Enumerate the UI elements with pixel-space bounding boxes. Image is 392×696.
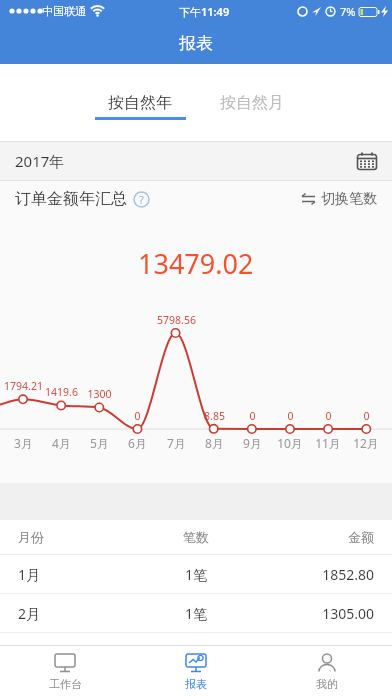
staticText: 报表 [179,33,213,54]
staticText: 12月 [353,435,379,451]
staticText: 5798.56 [157,313,196,327]
staticText: 1笔 [98,565,294,584]
staticText: 1852.80 [294,565,374,584]
staticText: 按自然月 [220,93,284,113]
button[interactable]: 切换笔数 [301,190,377,208]
staticText: 0 [134,409,141,423]
staticText: 1月 [18,565,98,584]
staticText: 11月 [315,435,341,451]
staticText: 月份 [18,529,98,545]
staticText: 7% [340,4,356,19]
button[interactable]: 我的 [261,646,392,696]
staticText: 1794.21 [4,379,43,393]
staticText: 按自然年 [108,93,172,113]
staticText: 我的 [316,677,338,691]
staticText: 0 [325,409,332,423]
staticText: 13479.02 [138,245,254,282]
staticText: 订单金额年汇总 [15,189,127,209]
staticText: 3月 [14,435,33,451]
button[interactable]: 1月 [0,555,392,593]
button[interactable]: 按自然月 [196,64,308,141]
staticText: 7月 [167,435,186,451]
staticText: 工作台 [49,677,82,691]
staticText: 10月 [277,435,303,451]
button[interactable]: ? [133,191,150,208]
button[interactable]: 报表 [130,646,261,696]
staticText: 8.85 [204,409,225,423]
button[interactable]: 2月 [0,594,392,632]
staticText: 笔数 [98,529,294,545]
staticText: 9月 [243,435,262,451]
staticText: 4月 [52,435,71,451]
staticText: 2月 [18,604,98,623]
staticText: 切换笔数 [321,190,377,208]
button[interactable]: 工作台 [0,646,130,696]
staticText: 1305.00 [294,604,374,623]
staticText: 中国联通 [42,4,86,18]
staticText: ? [139,192,144,207]
staticText: 下午11:49 [179,4,230,19]
staticText: 金额 [294,529,374,545]
staticText: 8月 [205,435,224,451]
staticText: 2017年 [15,151,65,171]
staticText: 6月 [128,435,147,451]
staticText: 1笔 [98,604,294,623]
staticText: 报表 [185,677,207,691]
button[interactable]: 2017年 [0,142,392,180]
staticText: 0 [363,409,370,423]
staticText: 0 [249,409,256,423]
staticText: 0 [287,409,294,423]
staticText: 1300 [87,387,112,401]
staticText: 1419.6 [45,385,78,399]
button[interactable]: 按自然年 [84,64,196,141]
staticText: 5月 [90,435,109,451]
